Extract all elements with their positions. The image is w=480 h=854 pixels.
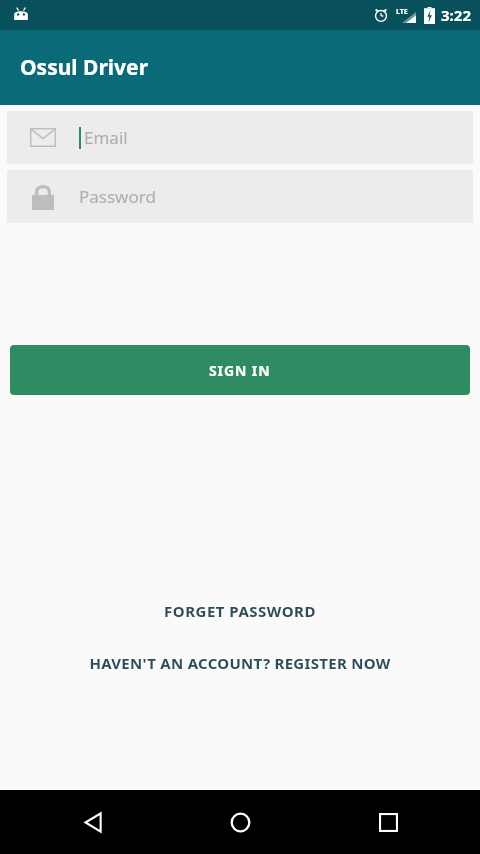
staticText: Email (84, 126, 128, 149)
button[interactable]: Back (38, 790, 148, 854)
button[interactable]: FORGET PASSWORD (0, 601, 480, 621)
staticText: 3:22 (441, 5, 471, 25)
staticText: Password (79, 185, 156, 208)
staticText: Ossul Driver (20, 53, 149, 82)
staticText: SIGN IN (209, 361, 271, 380)
button[interactable]: Password input field (7, 170, 473, 223)
staticText: FORGET PASSWORD (164, 601, 316, 621)
button[interactable]: Home (185, 790, 295, 854)
button[interactable]: Email input field (7, 111, 473, 164)
staticText: LTE (396, 7, 408, 17)
button[interactable]: Recent apps (333, 790, 443, 854)
button[interactable]: SIGN IN (10, 345, 470, 395)
staticText: HAVEN'T AN ACCOUNT? REGISTER NOW (89, 653, 391, 673)
button[interactable]: HAVEN'T AN ACCOUNT? REGISTER NOW (0, 653, 480, 673)
